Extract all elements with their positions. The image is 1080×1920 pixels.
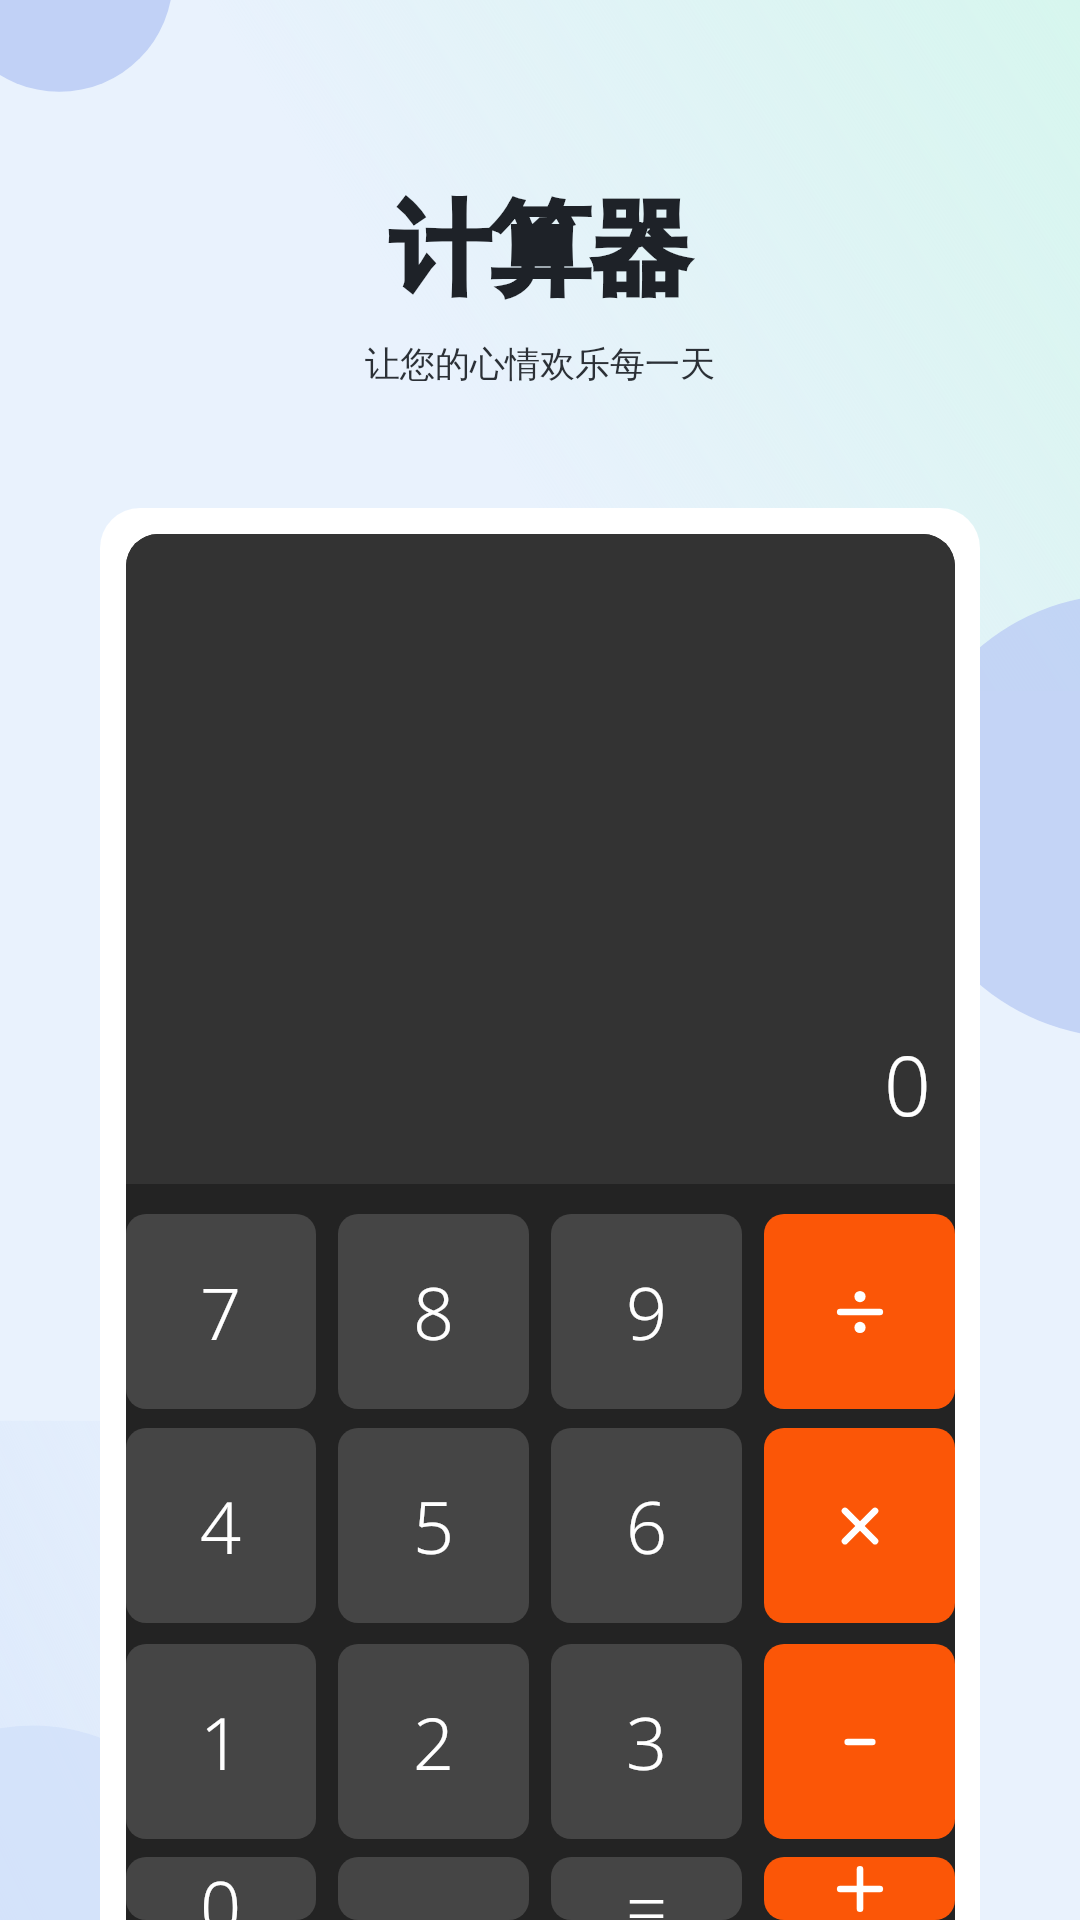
button[interactable]: 8 [338, 1214, 529, 1409]
button[interactable]: = [551, 1857, 742, 1920]
staticText: 5 [413, 1477, 455, 1575]
staticText: 9 [626, 1263, 668, 1361]
button[interactable]: 4 [126, 1428, 316, 1623]
staticText: 8 [413, 1263, 455, 1361]
button[interactable]: 2 [338, 1644, 529, 1839]
staticText: 0 [884, 1028, 931, 1140]
button[interactable]: Add [764, 1857, 955, 1920]
staticText: 0 [200, 1857, 242, 1920]
button[interactable]: 5 [338, 1428, 529, 1623]
button[interactable]: 6 [551, 1428, 742, 1623]
button[interactable]: Subtract [764, 1644, 955, 1839]
button[interactable]: Divide [764, 1214, 955, 1409]
button[interactable]: 9 [551, 1214, 742, 1409]
staticText: 4 [200, 1477, 242, 1575]
staticText: 7 [200, 1263, 242, 1361]
button[interactable]: . [338, 1857, 529, 1920]
button[interactable]: 1 [126, 1644, 316, 1839]
button[interactable]: 0 [126, 1857, 316, 1920]
staticText: 计算器 [390, 188, 690, 314]
staticText: 6 [626, 1477, 668, 1575]
staticText: 2 [413, 1693, 455, 1791]
button[interactable]: 3 [551, 1644, 742, 1839]
button[interactable]: 7 [126, 1214, 316, 1409]
staticText: 3 [626, 1693, 668, 1791]
staticText: 让您的心情欢乐每一天 [365, 342, 715, 386]
staticText: 1 [200, 1693, 242, 1791]
staticText: = [626, 1857, 668, 1920]
button[interactable]: Multiply [764, 1428, 955, 1623]
